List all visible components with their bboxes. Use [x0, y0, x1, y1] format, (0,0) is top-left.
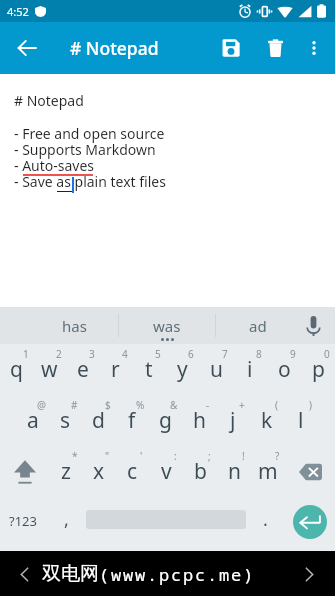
button[interactable]: w [33, 344, 66, 395]
button[interactable]: u [199, 344, 233, 395]
staticText: ad [249, 316, 267, 336]
button[interactable]: e [66, 344, 99, 395]
staticText: z [61, 457, 71, 486]
button[interactable]: has [30, 307, 118, 344]
button[interactable]: ad [216, 307, 300, 344]
staticText: 8 [256, 347, 262, 361]
staticText: 2 [56, 347, 62, 361]
staticText: 7 [222, 347, 228, 361]
staticText: m [258, 457, 278, 486]
button[interactable]: d [82, 395, 115, 446]
button[interactable]: . [246, 497, 285, 551]
staticText: 6 [188, 347, 194, 361]
staticText: (www.pcpc.me) [99, 563, 255, 586]
staticText: k [261, 406, 273, 435]
staticText: 4:52 [7, 4, 29, 19]
staticText: & [170, 398, 178, 412]
button[interactable]: z [49, 446, 82, 497]
staticText: l [298, 406, 304, 435]
button[interactable]: k [250, 395, 284, 446]
staticText: % [136, 398, 145, 412]
button[interactable]: v [149, 446, 183, 497]
staticText: 4 [122, 347, 128, 361]
staticText: q [10, 355, 23, 384]
staticText: * [72, 449, 78, 463]
staticText: 双电网 [42, 562, 99, 586]
button[interactable]: r [99, 344, 132, 395]
button[interactable]: c [115, 446, 149, 497]
staticText: d [92, 406, 105, 435]
button[interactable]: m [251, 446, 285, 497]
staticText: n [228, 457, 241, 486]
button[interactable]: a [16, 395, 49, 446]
button[interactable]: j [216, 395, 250, 446]
staticText: v [161, 457, 172, 486]
staticText: : [174, 449, 177, 463]
staticText: 5 [155, 347, 161, 361]
staticText: a [27, 406, 39, 435]
staticText: . [263, 507, 268, 532]
staticText: ( [275, 398, 278, 412]
button[interactable]: Previous [14, 564, 34, 584]
staticText: # Notepad - Free and open source - Suppo… [14, 91, 166, 191]
button[interactable]: g [148, 395, 182, 446]
button[interactable]: t [132, 344, 165, 395]
staticText: + [239, 398, 245, 412]
staticText: ) [309, 398, 312, 412]
staticText: 9 [290, 347, 296, 361]
staticText: 0 [324, 347, 330, 361]
button[interactable]: Save [203, 22, 258, 74]
button[interactable]: h [182, 395, 216, 446]
staticText: , [64, 507, 69, 532]
button[interactable]: Voice input [291, 307, 335, 344]
staticText: x [93, 457, 105, 486]
button[interactable]: l [284, 395, 318, 446]
button[interactable]: Space [86, 497, 246, 551]
staticText: ' [140, 449, 143, 463]
button[interactable]: , [46, 497, 86, 551]
button[interactable]: Next [299, 564, 319, 584]
button[interactable]: x [82, 446, 115, 497]
staticText: e [77, 355, 89, 384]
staticText: s [60, 406, 71, 435]
button[interactable]: o [267, 344, 301, 395]
staticText: f [128, 406, 136, 435]
staticText: i [247, 355, 253, 384]
button[interactable]: s [49, 395, 82, 446]
button[interactable]: i [233, 344, 267, 395]
button[interactable]: ?123 [0, 497, 46, 551]
staticText: y [177, 355, 188, 384]
staticText: t [145, 355, 153, 384]
staticText: has [62, 316, 87, 336]
staticText: # [71, 398, 78, 412]
button[interactable]: b [183, 446, 217, 497]
button[interactable]: Navigate up [0, 22, 53, 74]
button[interactable]: n [217, 446, 251, 497]
staticText: " [105, 449, 110, 463]
staticText: p [312, 355, 325, 384]
staticText: # Notepad [70, 36, 159, 60]
staticText: 1 [23, 347, 29, 361]
button[interactable]: Backspace [285, 446, 335, 497]
button[interactable]: Shift [0, 446, 49, 497]
staticText: o [278, 355, 291, 384]
staticText: @ [37, 398, 46, 412]
button[interactable]: was [119, 307, 215, 344]
staticText: j [230, 406, 236, 435]
button[interactable]: Delete [258, 22, 293, 74]
button[interactable]: p [301, 344, 335, 395]
staticText: $ [105, 398, 111, 412]
staticText: r [111, 355, 120, 384]
staticText: g [159, 406, 172, 435]
staticText: u [210, 355, 223, 384]
button[interactable]: Enter [285, 497, 335, 551]
button[interactable]: q [0, 344, 33, 395]
button[interactable]: f [115, 395, 148, 446]
staticText: b [194, 457, 207, 486]
staticText: w [41, 355, 58, 384]
button[interactable]: y [165, 344, 199, 395]
button[interactable]: More options [293, 22, 335, 74]
staticText: - [206, 398, 210, 412]
staticText: ? [275, 449, 280, 463]
staticText: ; [208, 449, 211, 463]
